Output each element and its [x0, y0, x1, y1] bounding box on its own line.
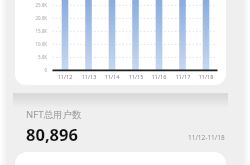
button[interactable] — [15, 0, 226, 85]
staticText: 15.0K — [27, 28, 47, 34]
staticText: 11/15 — [125, 73, 147, 80]
staticText: 0 — [27, 67, 47, 73]
staticText: NFT总用户数 — [26, 108, 82, 121]
staticText: 20.0K — [27, 15, 47, 21]
button[interactable]: NFT总用户数 — [26, 108, 82, 145]
staticText: 11/14 — [101, 73, 123, 80]
staticText: 11/12-11/18 — [188, 133, 225, 142]
staticText: 10.0K — [27, 41, 47, 47]
staticText: 11/13 — [78, 73, 100, 80]
staticText: 11/16 — [148, 73, 170, 80]
staticText: 11/12 — [54, 73, 76, 80]
staticText: 80,896 — [26, 123, 78, 145]
staticText: 25.0K — [27, 2, 47, 8]
staticText: 11/17 — [172, 73, 194, 80]
staticText: 11/18 — [195, 73, 217, 80]
staticText: 5.0K — [27, 54, 47, 60]
